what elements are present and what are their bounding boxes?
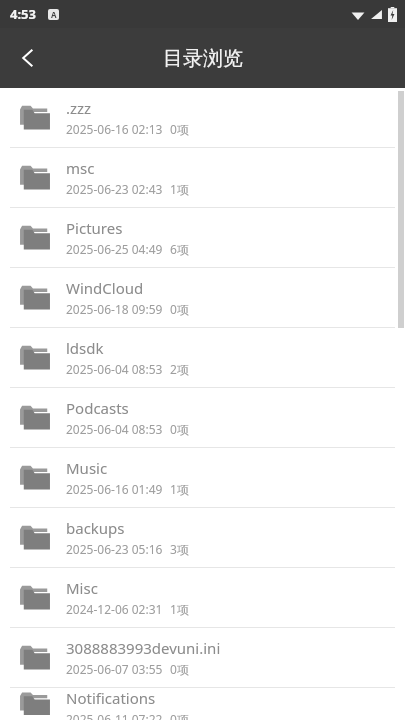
staticText: 2025-06-23 02:43 <box>66 181 163 197</box>
button[interactable]: Podcasts <box>0 388 405 447</box>
staticText: Music <box>66 458 108 478</box>
button[interactable]: 3088883993devuni.ini <box>0 628 405 687</box>
staticText: 2025-06-04 08:53 <box>66 361 163 377</box>
staticText: Podcasts <box>66 398 129 418</box>
button[interactable]: .zzz <box>0 88 405 147</box>
staticText: Notifications <box>66 688 156 708</box>
staticText: backups <box>66 518 125 538</box>
staticText: 0项 <box>170 121 189 137</box>
staticText: 2025-06-18 09:59 <box>66 301 163 317</box>
staticText: 2025-06-23 05:16 <box>66 541 163 557</box>
staticText: 6项 <box>170 241 189 257</box>
staticText: 2025-06-11 07:22 <box>66 711 163 720</box>
staticText: 2025-06-25 04:49 <box>66 241 163 257</box>
staticText: 1项 <box>170 181 189 197</box>
button[interactable]: ldsdk <box>0 328 405 387</box>
staticText: 目录浏览 <box>163 46 243 71</box>
button[interactable]: Pictures <box>0 208 405 267</box>
button[interactable]: Music <box>0 448 405 507</box>
button[interactable]: Back <box>0 30 56 86</box>
staticText: 2025-06-07 03:55 <box>66 661 163 677</box>
button[interactable]: backups <box>0 508 405 567</box>
staticText: 0项 <box>170 421 189 437</box>
staticText: 0项 <box>170 711 189 720</box>
button[interactable]: Misc <box>0 568 405 627</box>
staticText: Misc <box>66 578 98 598</box>
button[interactable]: WindCloud <box>0 268 405 327</box>
staticText: WindCloud <box>66 278 144 298</box>
staticText: 1项 <box>170 481 189 497</box>
staticText: .zzz <box>66 98 92 118</box>
staticText: 1项 <box>170 601 189 617</box>
staticText: ldsdk <box>66 338 104 358</box>
staticText: Pictures <box>66 218 123 238</box>
button[interactable]: Notifications <box>0 688 405 720</box>
staticText: msc <box>66 158 95 178</box>
staticText: 3项 <box>170 541 189 557</box>
staticText: 2项 <box>170 361 189 377</box>
staticText: 2024-12-06 02:31 <box>66 601 163 617</box>
staticText: 2025-06-16 01:49 <box>66 481 163 497</box>
staticText: 0项 <box>170 301 189 317</box>
staticText: 4:53 <box>10 5 36 23</box>
button[interactable]: msc <box>0 148 405 207</box>
staticText: 0项 <box>170 661 189 677</box>
staticText: 2025-06-16 02:13 <box>66 121 163 137</box>
staticText: A <box>51 9 57 20</box>
staticText: 3088883993devuni.ini <box>66 638 221 658</box>
staticText: 2025-06-04 08:53 <box>66 421 163 437</box>
